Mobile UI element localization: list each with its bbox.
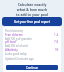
staticText: Get your free pool report: [14, 20, 50, 24]
staticText: Alkalinity: [5, 48, 18, 52]
button[interactable]: Alkalinity: [5, 48, 59, 55]
button[interactable]: Continue: [6, 65, 58, 70]
staticText: Updated 2 minutes ago: [5, 57, 34, 61]
staticText: Free chlorine: [5, 33, 24, 37]
staticText: Continue: [26, 66, 38, 70]
staticText: Calculate exactly what & how much to add…: [0, 2, 64, 17]
staticText: pH level: [5, 40, 17, 44]
staticText: 1.4: [54, 33, 59, 37]
staticText: 7.8: [54, 40, 59, 44]
button[interactable]: Get your free pool report: [2, 17, 62, 26]
button[interactable]: Free chlorine: [5, 33, 59, 40]
staticText: 95: [55, 48, 59, 52]
staticText: Pool chemistry: [5, 29, 24, 33]
staticText: Add 120 g of granules: [5, 37, 32, 41]
staticText: Looks good today: [5, 52, 27, 56]
staticText: Add 250 ml of acid: [5, 44, 28, 48]
button[interactable]: pH level: [5, 40, 59, 47]
